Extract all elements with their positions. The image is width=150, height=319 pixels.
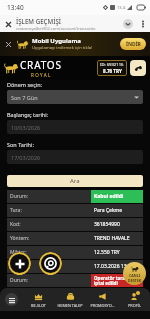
staticText: 13.4 — [117, 5, 125, 10]
button[interactable]: HEMEN TALEP — [54, 288, 86, 311]
staticText: TREND HAVALE — [94, 235, 130, 242]
staticText: Başlangıç tarihi: — [7, 111, 49, 118]
staticText: Tarih: — [10, 263, 23, 270]
button[interactable]: Ara — [7, 175, 143, 187]
staticText: Durum: — [10, 277, 28, 284]
staticText: PROMOSYO... — [90, 303, 115, 308]
button[interactable]: Close — [0, 16, 16, 32]
staticText: CRATOS — [20, 58, 62, 72]
button[interactable]: Close ad — [2, 38, 14, 50]
staticText: cratosroyalbet902.com/account/transactio — [16, 26, 96, 31]
staticText: Dönem seçin: — [7, 81, 43, 88]
button[interactable]: Download — [119, 15, 136, 32]
button[interactable]: PROMOSYO... — [86, 288, 118, 311]
staticText: Son Tarihi: — [7, 141, 34, 148]
staticText: İNDİR — [126, 41, 141, 48]
button[interactable]: Menu — [0, 288, 22, 311]
button[interactable]: BE-SLOT — [22, 288, 54, 311]
staticText: Durum: — [10, 193, 28, 200]
staticText: 17/03/2026 — [11, 154, 139, 161]
staticText: Mobil Uygulama — [32, 37, 81, 45]
button[interactable]: ID: 6932116 — [100, 62, 124, 74]
button[interactable]: Live support — [123, 262, 146, 285]
staticText: 12.550 TRY — [94, 249, 120, 256]
staticText: Uygulamayı indirmek için tıkla! — [32, 45, 93, 51]
staticText: Kod: — [10, 221, 21, 228]
button[interactable]: WhatsApp — [39, 252, 62, 275]
staticText: 361854990 — [94, 221, 120, 228]
staticText: Tura: — [10, 207, 22, 214]
staticText: Operatör tarafından iptal edildi — [94, 275, 140, 286]
staticText: 17.03.2026 13:09:44 — [94, 263, 141, 270]
staticText: DESTEK — [128, 278, 142, 283]
button[interactable]: PROFİL — [118, 288, 150, 311]
button[interactable]: Menu — [130, 60, 146, 76]
button[interactable]: Add — [8, 252, 31, 275]
button[interactable]: More options — [136, 17, 150, 31]
staticText: İŞLEM GEÇMİŞİ — [16, 17, 61, 25]
button[interactable]: İNDİR — [120, 38, 146, 50]
staticText: Miktar: — [10, 249, 27, 256]
staticText: 10/03/2026 — [11, 124, 139, 131]
staticText: HEMEN TALEP — [57, 303, 83, 308]
staticText: Yöntem: — [10, 235, 30, 242]
staticText: 13:40 — [7, 3, 24, 12]
staticText: Para Çekme — [94, 207, 123, 214]
button[interactable]: Close ad — [0, 32, 150, 56]
button[interactable]: 17/03/2026 — [11, 150, 139, 164]
staticText: CANLI — [129, 273, 141, 278]
staticText: Son 7 Gün — [11, 94, 134, 101]
staticText: BE-SLOT — [31, 303, 46, 308]
staticText: Ara — [70, 177, 80, 185]
button[interactable]: 10/03/2026 — [11, 120, 139, 134]
button[interactable]: Son 7 Gün — [11, 90, 139, 104]
staticText: ID: 6932116 — [100, 62, 124, 68]
staticText: ROYAL — [31, 72, 52, 78]
staticText: 8.76 TRY — [103, 68, 122, 74]
staticText: Kabul edildi — [94, 193, 124, 200]
staticText: PROFİL — [128, 303, 141, 308]
